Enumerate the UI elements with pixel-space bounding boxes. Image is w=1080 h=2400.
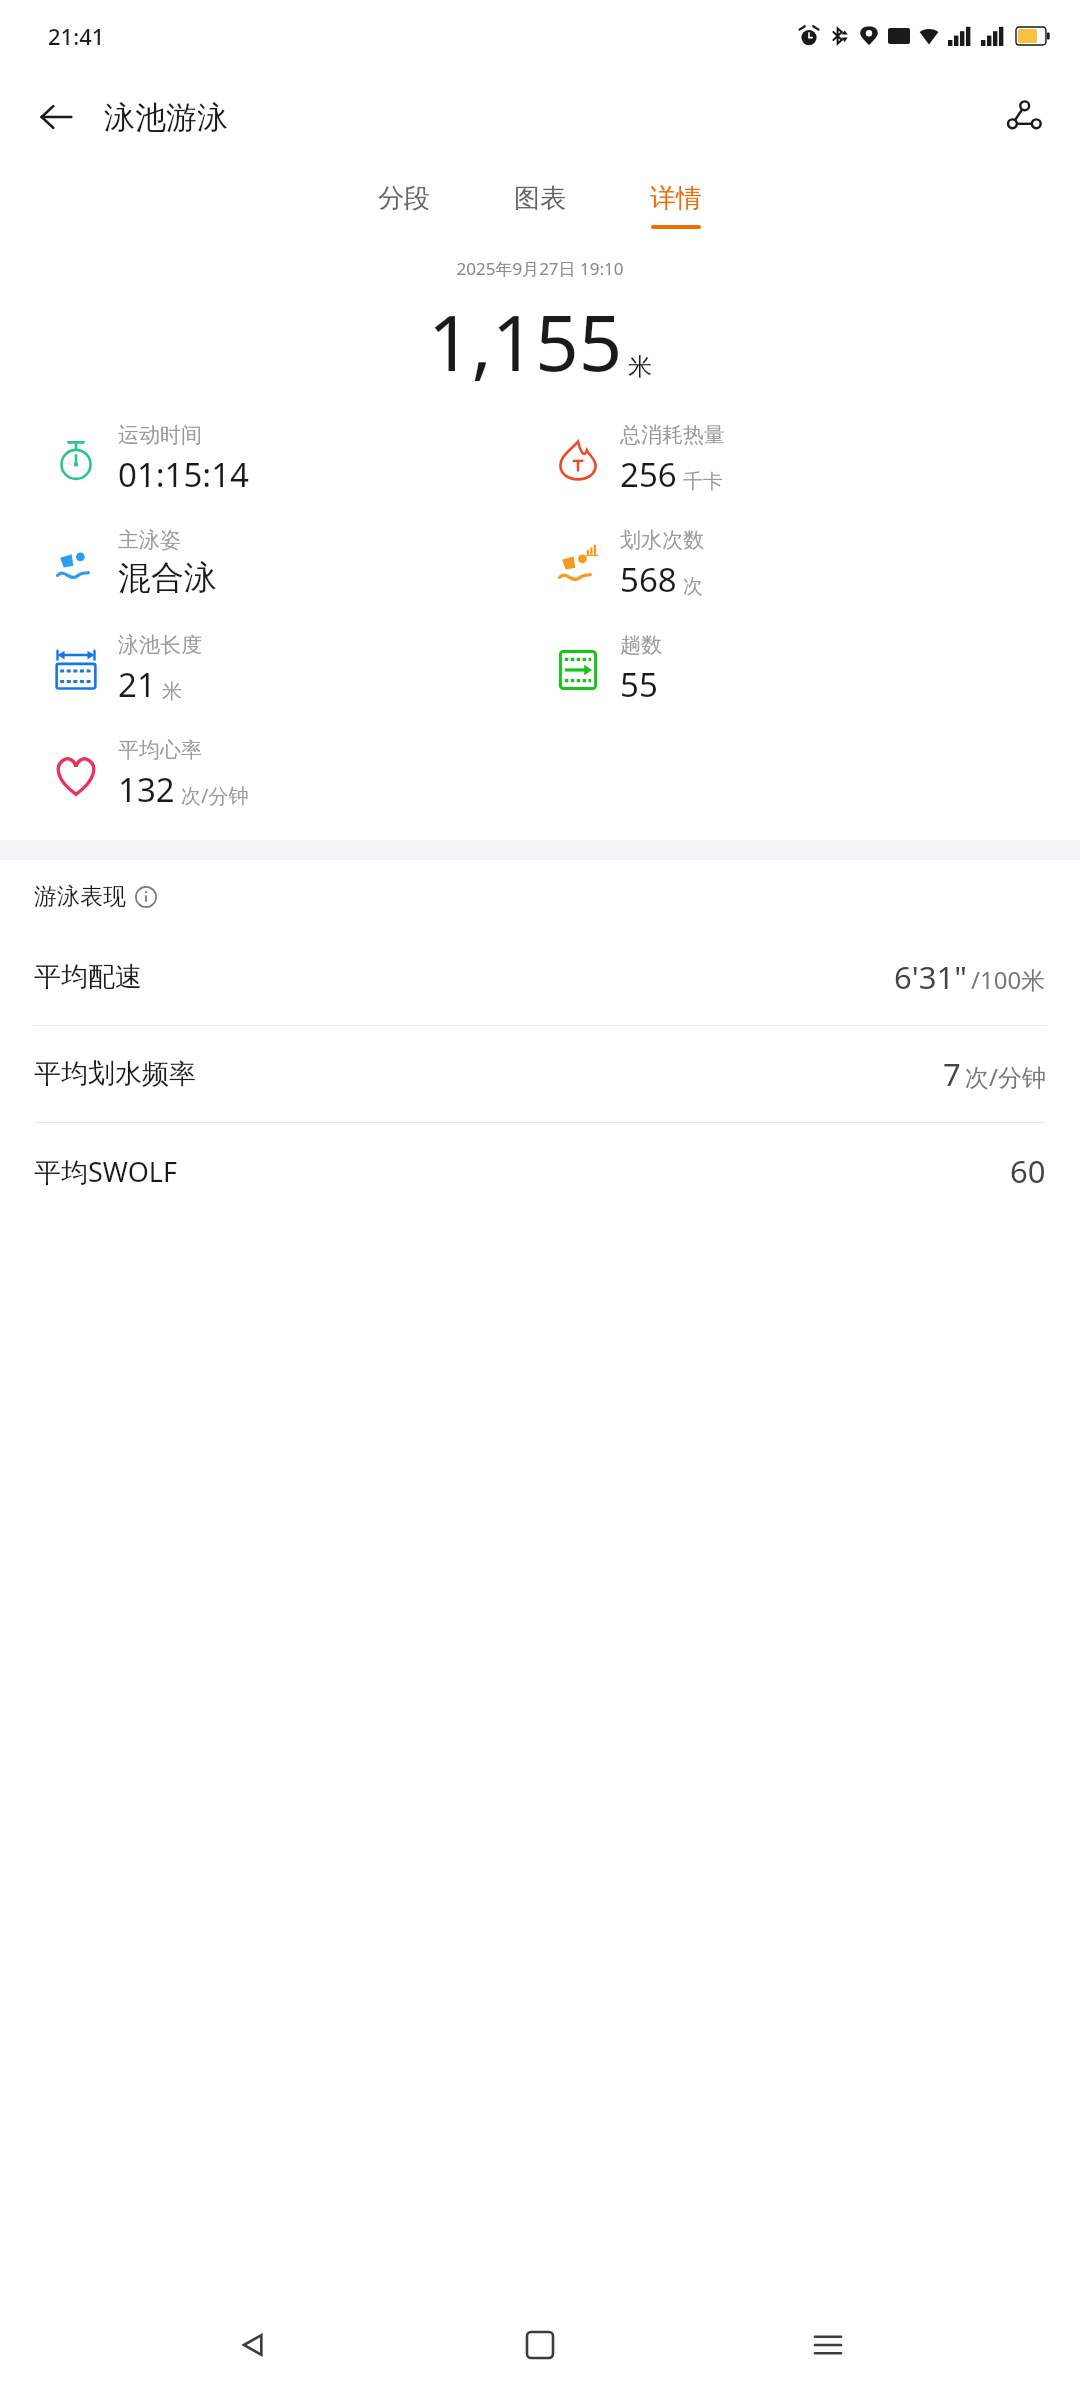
staticText: 次/分钟 [181,782,249,809]
staticText: 568 [620,557,677,602]
button[interactable]: 趟数 [550,632,662,707]
staticText: 平均配速 [34,960,142,994]
button[interactable]: 图表 [500,176,580,235]
staticText: 混合泳 [118,557,217,599]
button[interactable]: Share [994,87,1054,147]
staticText: 55 [620,662,658,707]
button[interactable]: 详情 [636,176,716,235]
staticText: 泳池游泳 [104,98,228,137]
staticText: 千卡 [683,469,723,494]
staticText: 分段 [378,182,430,215]
button[interactable]: 平均划水频率 [0,1026,1080,1122]
button[interactable]: 主泳姿 [48,527,217,599]
staticText: 2025年9月27日 19:10 [0,257,1080,280]
staticText: 7 [943,1053,961,1095]
staticText: 21 [118,662,156,707]
staticText: 主泳姿 [118,527,181,553]
button[interactable]: 平均SWOLF [0,1123,1080,1219]
staticText: 次 [683,574,703,599]
staticText: 平均心率 [118,737,202,763]
button[interactable]: Back [218,2310,288,2380]
button[interactable]: Back [26,87,86,147]
staticText: 01:15:14 [118,452,249,497]
button[interactable]: 分段 [364,176,444,235]
button[interactable]: Home [505,2310,575,2380]
button[interactable]: 平均配速 [0,929,1080,1025]
button[interactable]: 泳池长度 [48,632,202,707]
staticText: 6'31" [894,956,967,998]
staticText: 21:41 [48,21,105,51]
button[interactable]: Recents [793,2310,863,2380]
staticText: 米 [628,352,652,382]
staticText: 平均SWOLF [34,1153,177,1190]
staticText: 平均划水频率 [34,1057,196,1091]
staticText: 泳池长度 [118,632,202,658]
button[interactable]: 总消耗热量 [550,422,725,497]
staticText: 132 [118,767,175,812]
staticText: 运动时间 [118,422,202,448]
staticText: 图表 [514,182,566,215]
staticText: /100米 [971,963,1046,996]
button[interactable]: Info [134,885,158,909]
staticText: 总消耗热量 [620,422,725,448]
button[interactable]: 平均心率 [48,737,249,812]
staticText: 米 [162,679,182,704]
staticText: 游泳表现 [34,882,126,911]
staticText: 趟数 [620,632,662,658]
staticText: 60 [1010,1150,1046,1192]
staticText: 256 [620,452,677,497]
button[interactable]: 运动时间 [48,422,249,497]
button[interactable]: 划水次数 [550,527,704,602]
staticText: 划水次数 [620,527,704,553]
staticText: 详情 [650,182,702,215]
staticText: 次/分钟 [965,1060,1046,1093]
staticText: 1,155 [428,290,623,394]
